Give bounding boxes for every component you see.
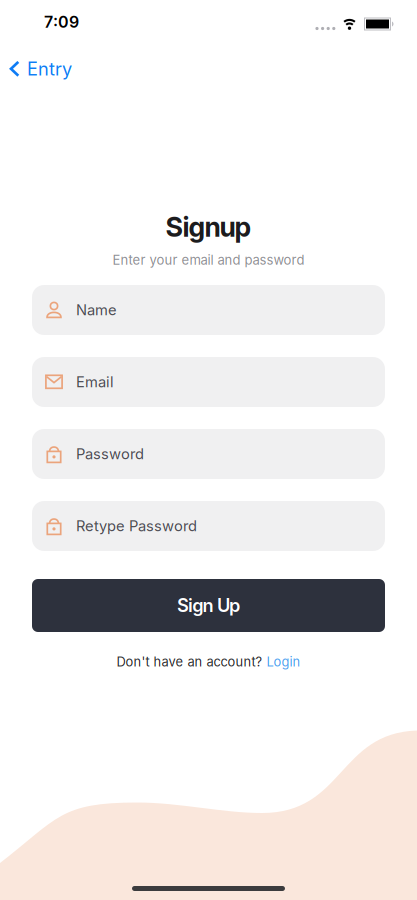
- button[interactable]: Password: [32, 429, 385, 479]
- staticText: Enter your email and password: [112, 252, 304, 268]
- staticText: Don't have an account?: [116, 654, 262, 670]
- button[interactable]: Name: [32, 285, 385, 335]
- staticText: Name: [76, 301, 117, 319]
- staticText: Retype Password: [76, 517, 197, 535]
- button[interactable]: Sign Up: [32, 579, 385, 632]
- button[interactable]: Email: [32, 357, 385, 407]
- staticText: Password: [76, 445, 144, 463]
- staticText: Sign Up: [177, 594, 240, 616]
- button[interactable]: Entry: [9, 58, 72, 80]
- staticText: Login: [266, 654, 300, 670]
- staticText: Email: [76, 373, 114, 391]
- staticText: 7:09: [44, 12, 79, 32]
- staticText: Entry: [27, 58, 72, 80]
- button[interactable]: Login: [266, 654, 300, 670]
- button[interactable]: Retype Password: [32, 501, 385, 551]
- staticText: Signup: [165, 211, 251, 243]
